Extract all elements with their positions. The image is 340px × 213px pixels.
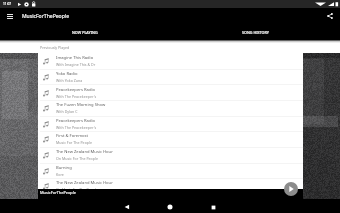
staticText: On Music For The People [56,156,98,161]
staticText: NOW PLAYING [72,30,98,35]
staticText: With Imagine This & Dr [56,62,96,67]
staticText: 11:07 [3,2,12,6]
staticText: The New Zealand Music Hour [56,149,113,155]
staticText: Imagine This Radio [56,55,94,61]
staticText: With The Peacekeeper's [56,94,97,99]
button[interactable]: Peacekeepers Radio [37,116,303,132]
staticText: With Dylan C [56,109,78,114]
button[interactable]: Open navigation menu [3,9,17,23]
staticText: Previously Played [40,45,70,50]
staticText: Yoko Radio [56,71,78,77]
button[interactable]: Play [284,182,298,196]
button[interactable]: The New Zealand Music Hour [37,178,303,194]
button[interactable]: Back [115,200,139,213]
button[interactable]: First & Foremost [37,131,303,147]
staticText: Burning [56,165,72,171]
button[interactable]: Imagine This Radio [37,53,303,69]
staticText: Kore [56,172,64,177]
staticText: With The Peacekeeper's [56,125,97,130]
staticText: Peacekeepers Radio [56,118,96,124]
button[interactable]: Share [323,9,337,23]
staticText: SONG HISTORY [242,30,269,35]
staticText: Music For The People [56,140,92,145]
button[interactable]: Yoko Radio [37,69,303,85]
staticText: With Yoko Zuna [56,78,83,83]
button[interactable]: Recent apps [201,200,225,213]
button[interactable]: The New Zealand Music Hour [37,147,303,163]
staticText: MusicForThePeople [40,190,76,195]
button[interactable]: MusicForThePeople [0,189,340,199]
button[interactable]: NOW PLAYING [0,24,170,40]
button[interactable]: The Fuzen Morning Show [37,100,303,116]
staticText: The New Zealand Music Hour [56,180,113,186]
staticText: Peacekeepers Radio [56,87,96,93]
button[interactable]: Burning [37,163,303,179]
staticText: First & Foremost [56,133,89,139]
staticText: On Music For The People [56,187,98,192]
button[interactable]: Home [158,200,182,213]
staticText: The Fuzen Morning Show [56,102,106,108]
button[interactable]: SONG HISTORY [170,24,340,40]
button[interactable]: Peacekeepers Radio [37,85,303,101]
staticText: MusicForThePeople [22,13,70,20]
